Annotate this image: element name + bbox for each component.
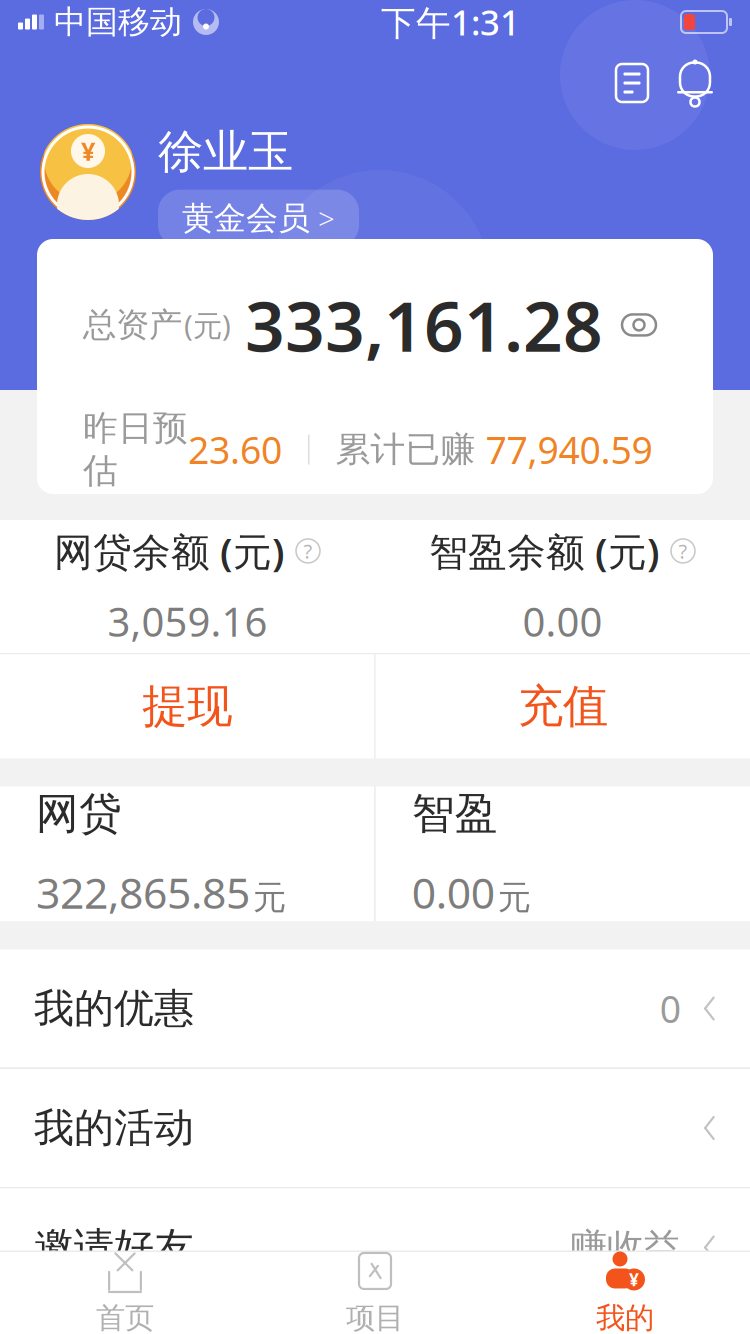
button[interactable]: 网贷 [0, 786, 374, 921]
staticText: 总资产 [83, 304, 182, 345]
button[interactable]: 项目 [250, 1252, 500, 1334]
staticText: ¥ [81, 134, 95, 168]
button[interactable]: 我的活动 [0, 1069, 750, 1187]
button[interactable]: 充值 [376, 654, 750, 758]
staticText: 项目 [346, 1300, 404, 1334]
staticText: 元 [253, 877, 286, 918]
staticText: ? [303, 538, 312, 564]
staticText: 下午1:31 [381, 0, 520, 45]
staticText: 333,161.28 [245, 279, 603, 371]
staticText: 我的活动 [34, 1103, 194, 1152]
staticText: 邀请好友 [34, 1223, 194, 1272]
staticText: 赚收益 [570, 1225, 681, 1270]
staticText: 我的 [596, 1300, 654, 1334]
staticText: 3,059.16 [107, 595, 267, 648]
button[interactable]: 首页 [0, 1252, 250, 1334]
staticText: > [318, 199, 335, 238]
staticText: 0.00 [522, 595, 602, 648]
staticText: 322,865.85 [36, 864, 250, 921]
staticText: 首页 [96, 1300, 154, 1334]
staticText: 77,940.59 [485, 425, 652, 474]
staticText: 充值 [518, 679, 608, 734]
button[interactable]: 邀请好友 [0, 1188, 750, 1306]
staticText: ¥ [629, 1268, 639, 1291]
button[interactable]: 我的优惠 [0, 949, 750, 1067]
button[interactable]: 智盈 [376, 786, 750, 921]
button[interactable]: ¥ [500, 1252, 750, 1334]
staticText: 0.00 [412, 864, 495, 921]
staticText: 提现 [142, 679, 232, 734]
staticText: 网贷余额 (元) [54, 525, 285, 577]
staticText: 中国移动 [54, 2, 182, 42]
staticText: (元) [184, 305, 231, 344]
staticText: 网贷 [36, 787, 122, 840]
button[interactable]: 账单 [602, 56, 662, 110]
staticText: 黄金会员 [182, 199, 310, 238]
button[interactable]: 消息通知 [662, 56, 728, 110]
staticText: 元 [498, 877, 531, 918]
staticText: ? [678, 538, 687, 564]
staticText: 徐业玉 [158, 124, 293, 180]
staticText: 昨日预估 [83, 407, 188, 492]
staticText: 智盈余额 (元) [429, 525, 660, 577]
staticText: 我的优惠 [34, 984, 194, 1033]
staticText: 0 [660, 984, 681, 1033]
button[interactable]: 头像 [40, 124, 136, 220]
staticText: 智盈 [412, 787, 498, 840]
staticText: 累计已赚 [335, 428, 485, 471]
button[interactable]: 显示或隐藏金额 [611, 302, 667, 348]
button[interactable]: 黄金会员 [158, 190, 359, 247]
button[interactable]: 提现 [0, 654, 374, 758]
staticText: 23.60 [188, 425, 282, 474]
